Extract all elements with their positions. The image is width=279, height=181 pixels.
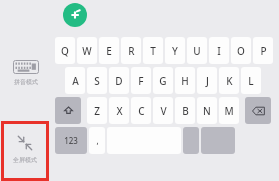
button[interactable]: M	[219, 97, 239, 124]
staticText: 123	[64, 135, 78, 146]
button[interactable]: J	[197, 67, 217, 94]
button[interactable]: Shift	[55, 97, 81, 124]
staticText: ,	[96, 135, 99, 146]
button[interactable]: Z	[87, 97, 107, 124]
staticText: G	[159, 74, 167, 88]
button[interactable]: 123	[55, 127, 87, 154]
button[interactable]: App badge	[63, 3, 87, 27]
button[interactable]: S	[87, 67, 107, 94]
staticText: U	[193, 44, 201, 58]
button[interactable]: R	[121, 37, 141, 64]
button[interactable]: L	[241, 67, 261, 94]
button[interactable]: 拼音模式	[13, 60, 39, 86]
staticText: T	[150, 44, 156, 58]
button[interactable]: ,	[89, 127, 105, 154]
button[interactable]: X	[109, 97, 129, 124]
button[interactable]: O	[231, 37, 251, 64]
staticText: J	[206, 74, 209, 88]
staticText: O	[237, 44, 245, 58]
button[interactable]: C	[131, 97, 151, 124]
staticText: 全屏模式	[13, 156, 37, 164]
staticText: S	[94, 74, 100, 88]
button[interactable]: D	[109, 67, 129, 94]
button[interactable]: Collapse keyboard	[13, 135, 37, 164]
staticText: V	[160, 104, 167, 118]
button[interactable]: V	[153, 97, 173, 124]
staticText: A	[72, 74, 79, 88]
button[interactable]: F	[131, 67, 151, 94]
button[interactable]: N	[197, 97, 217, 124]
staticText: H	[181, 74, 189, 88]
staticText: E	[106, 44, 112, 58]
staticText: I	[217, 44, 221, 58]
button[interactable]: E	[99, 37, 119, 64]
button[interactable]: P	[253, 37, 273, 64]
staticText: R	[128, 44, 135, 58]
button[interactable]: H	[175, 67, 195, 94]
button[interactable]: K	[219, 67, 239, 94]
button[interactable]	[201, 127, 235, 154]
staticText: Z	[94, 104, 100, 118]
staticText: X	[116, 104, 123, 118]
staticText: W	[82, 44, 92, 58]
staticText: L	[248, 74, 254, 88]
staticText: P	[260, 44, 267, 58]
button[interactable]: I	[209, 37, 229, 64]
button[interactable]: U	[187, 37, 207, 64]
button[interactable]: W	[77, 37, 97, 64]
staticText: D	[115, 74, 123, 88]
staticText: Q	[61, 44, 69, 58]
button[interactable]: Backspace	[245, 97, 271, 124]
button[interactable]	[183, 127, 199, 154]
button[interactable]: B	[175, 97, 195, 124]
button[interactable]: G	[153, 67, 173, 94]
staticText: C	[138, 104, 145, 118]
staticText: F	[138, 74, 144, 88]
button[interactable]: Q	[55, 37, 75, 64]
staticText: B	[182, 104, 189, 118]
button[interactable]: Y	[165, 37, 185, 64]
staticText: M	[224, 104, 234, 118]
staticText: 拼音模式	[14, 78, 38, 86]
staticText: N	[203, 104, 211, 118]
staticText: K	[226, 74, 233, 88]
button[interactable]: T	[143, 37, 163, 64]
staticText: Y	[172, 44, 178, 58]
button[interactable]: A	[65, 67, 85, 94]
